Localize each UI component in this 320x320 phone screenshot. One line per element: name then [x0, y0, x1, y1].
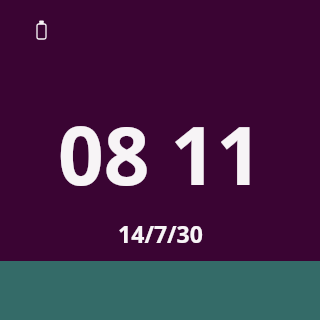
- staticText: 14/7/30: [118, 218, 203, 249]
- staticText: 08 11: [58, 99, 262, 208]
- button[interactable]: 08 11: [0, 99, 320, 249]
- button[interactable]: Battery level: [29, 15, 55, 45]
- button[interactable]: Battery level: [0, 0, 320, 320]
